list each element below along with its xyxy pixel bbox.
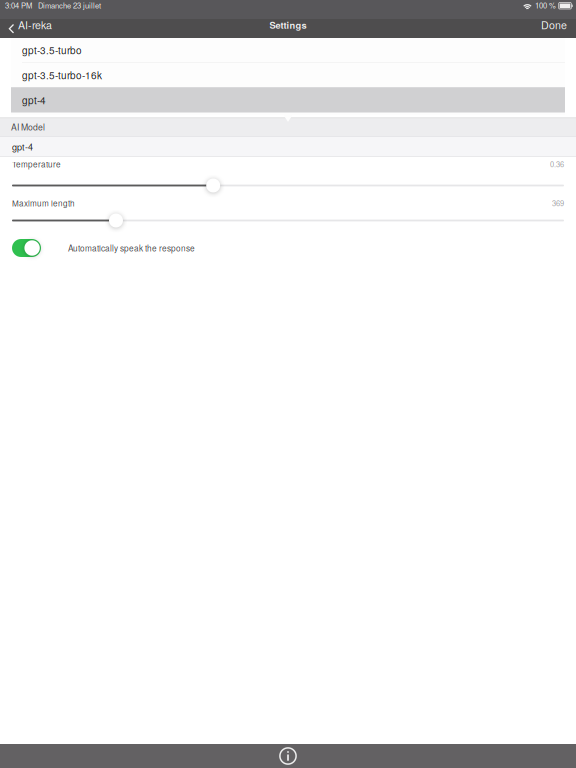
button[interactable]: gpt-4: [0, 136, 576, 157]
staticText: Done: [541, 17, 567, 32]
button[interactable]: Automatically speak the response: [12, 239, 564, 257]
staticText: AI-reka: [18, 17, 52, 32]
button[interactable]: Done: [532, 19, 576, 38]
staticText: gpt-4: [12, 140, 33, 153]
staticText: gpt-3.5-turbo-16k: [22, 68, 102, 82]
button[interactable]: Info: [268, 744, 308, 768]
staticText: Dimanche 23 juillet: [38, 0, 101, 11]
button[interactable]: gpt-4: [11, 87, 565, 113]
staticText: Maximum length: [12, 197, 75, 209]
staticText: 0.36: [550, 159, 564, 169]
staticText: Temperature: [12, 158, 61, 170]
staticText: Settings: [269, 18, 306, 32]
button[interactable]: AI-reka: [0, 19, 60, 38]
button[interactable]: gpt-3.5-turbo: [11, 38, 565, 62]
staticText: 369: [552, 198, 564, 208]
staticText: Automatically speak the response: [68, 242, 195, 254]
staticText: AI Model: [11, 120, 45, 133]
staticText: 100 %: [535, 0, 556, 11]
staticText: gpt-4: [22, 93, 46, 107]
staticText: 3:04 PM: [5, 0, 32, 11]
button[interactable]: gpt-3.5-turbo-16k: [11, 63, 565, 87]
staticText: gpt-3.5-turbo: [22, 43, 82, 57]
